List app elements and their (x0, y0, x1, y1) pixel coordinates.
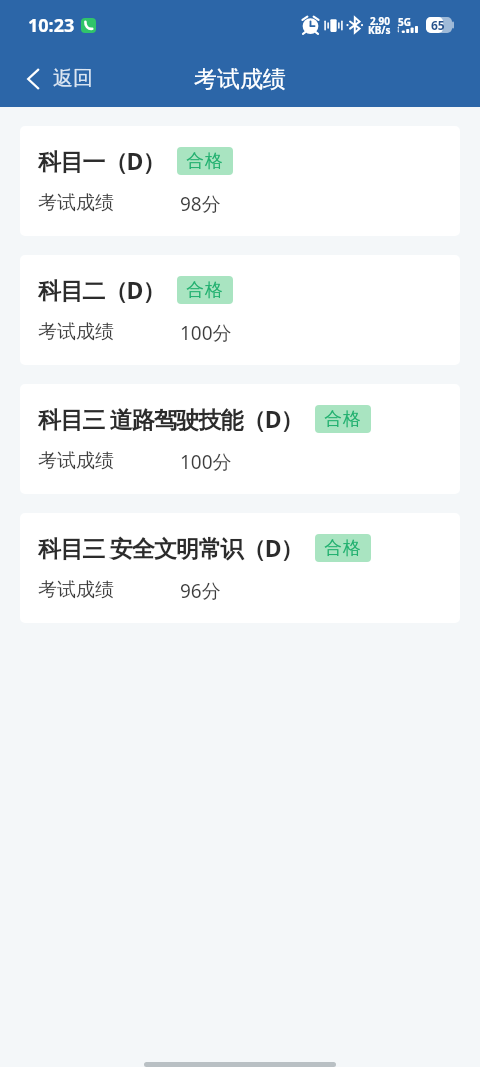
staticText: 100分 (180, 449, 232, 475)
staticText: 考试成绩 (194, 65, 286, 94)
staticText: 98分 (180, 191, 221, 217)
staticText: 2.90 (370, 14, 390, 28)
staticText: 考试成绩 (38, 578, 180, 602)
staticText: 科目三 道路驾驶技能（D） (38, 403, 303, 434)
staticText: 合格 (324, 408, 362, 431)
button[interactable]: 科目三 安全文明常识（D） (20, 513, 460, 623)
staticText: 合格 (324, 537, 362, 560)
staticText: 考试成绩 (38, 320, 180, 344)
staticText: 合格 (186, 279, 224, 302)
button[interactable]: 科目二（D） (20, 255, 460, 365)
staticText: 考试成绩 (38, 449, 180, 473)
staticText: 96分 (180, 578, 221, 604)
staticText: KB/s (368, 23, 391, 37)
staticText: 科目一（D） (38, 145, 165, 176)
staticText: 100分 (180, 320, 232, 346)
staticText: 科目三 安全文明常识（D） (38, 532, 303, 563)
button[interactable]: 科目一（D） (20, 126, 460, 236)
staticText: 5G (398, 15, 411, 29)
staticText: 考试成绩 (38, 191, 180, 215)
staticText: 返回 (53, 66, 93, 91)
staticText: 合格 (186, 150, 224, 173)
staticText: 65 (431, 17, 445, 33)
button[interactable]: 科目三 道路驾驶技能（D） (20, 384, 460, 494)
staticText: 科目二（D） (38, 274, 165, 305)
staticText: 10:23 (28, 13, 75, 38)
button[interactable]: 返回 (0, 58, 109, 99)
